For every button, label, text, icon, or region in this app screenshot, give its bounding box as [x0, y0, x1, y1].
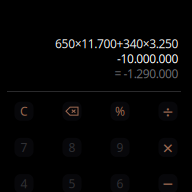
button[interactable]: 8	[48, 129, 96, 165]
staticText: = -1.290.000	[114, 65, 178, 81]
staticText: 5	[68, 176, 75, 191]
staticText: C	[20, 103, 28, 119]
staticText: −	[162, 171, 173, 192]
button[interactable]: 9	[96, 129, 144, 165]
button[interactable]: 4	[0, 166, 48, 192]
button[interactable]: −	[144, 166, 192, 192]
staticText: %	[115, 103, 125, 119]
button[interactable]: 5	[48, 166, 96, 192]
staticText: 9	[116, 139, 123, 155]
button[interactable]: 6	[96, 166, 144, 192]
button[interactable]: 7	[0, 129, 48, 165]
staticText: 6	[116, 176, 123, 191]
staticText: 4	[20, 176, 27, 191]
button[interactable]: Delete	[48, 93, 96, 129]
staticText: -10.000.000	[117, 50, 178, 66]
button[interactable]: ÷	[144, 93, 192, 129]
button[interactable]: ×	[144, 129, 192, 165]
staticText: 650×11.700+340×3.250	[55, 35, 178, 51]
staticText: ÷	[162, 99, 173, 124]
staticText: 7	[20, 139, 27, 155]
button[interactable]: C	[0, 93, 48, 129]
staticText: 8	[68, 139, 75, 155]
button[interactable]: %	[96, 93, 144, 129]
staticText: ×	[162, 135, 173, 160]
